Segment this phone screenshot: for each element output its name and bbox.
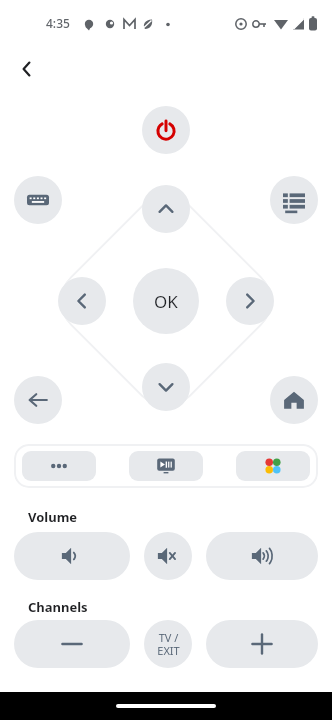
button[interactable]: Guide: [270, 176, 318, 224]
button[interactable]: Up: [142, 185, 190, 233]
button[interactable]: TV / Exit: [144, 620, 192, 668]
button[interactable]: Volume down: [14, 532, 130, 580]
staticText: TV / EXIT: [157, 630, 180, 658]
button[interactable]: Keyboard: [14, 176, 62, 224]
button[interactable]: Channel down: [14, 620, 130, 668]
staticText: 4:35: [46, 15, 70, 31]
button[interactable]: More options: [22, 451, 96, 481]
button[interactable]: Back: [10, 52, 44, 86]
button[interactable]: Channel up: [206, 620, 318, 668]
staticText: OK: [154, 290, 178, 313]
button[interactable]: Home: [270, 376, 318, 424]
button[interactable]: Play pause: [129, 451, 203, 481]
button[interactable]: Right: [226, 277, 274, 325]
button[interactable]: Left: [58, 277, 106, 325]
button[interactable]: Volume up: [206, 532, 318, 580]
staticText: Volume: [28, 508, 78, 526]
button[interactable]: Power: [142, 106, 190, 154]
button[interactable]: Down: [142, 363, 190, 411]
button[interactable]: OK: [133, 268, 199, 334]
button[interactable]: Colour buttons: [236, 451, 310, 481]
staticText: Channels: [28, 598, 88, 616]
button[interactable]: Back: [14, 376, 62, 424]
button[interactable]: Mute: [144, 532, 192, 580]
